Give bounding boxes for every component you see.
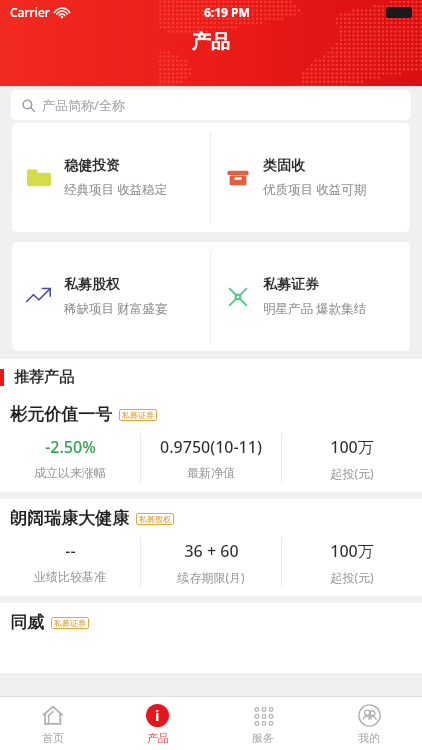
staticText: 6:19 PM xyxy=(204,4,250,20)
staticText: 业绩比较基准 xyxy=(34,569,106,584)
staticText: i xyxy=(155,706,160,725)
staticText: 100万 xyxy=(330,540,374,562)
other: 首页 xyxy=(41,704,64,727)
staticText: 同威 xyxy=(10,612,44,633)
other: 我的 xyxy=(358,704,381,727)
staticText: 朗阔瑞康大健康 xyxy=(10,508,129,529)
staticText: -2.50% xyxy=(45,436,96,458)
other: 产品 xyxy=(146,704,169,727)
staticText: 续存期限(月) xyxy=(177,569,245,585)
button[interactable]: 同威 xyxy=(0,603,422,673)
staticText: 类固收 xyxy=(263,157,305,175)
staticText: 成立以来涨幅 xyxy=(34,465,106,480)
button[interactable]: 我的 xyxy=(316,697,422,750)
button[interactable]: 首页 xyxy=(0,697,105,750)
staticText: 优质项目 收益可期 xyxy=(263,181,367,198)
button[interactable]: 私募证券 xyxy=(211,242,410,351)
button[interactable]: 稳健投资 xyxy=(12,123,210,232)
staticText: 明星产品 爆款集结 xyxy=(263,300,367,317)
button[interactable]: 服务 xyxy=(210,697,316,750)
staticText: 起投(元) xyxy=(330,569,374,585)
button[interactable]: 朗阔瑞康大健康 xyxy=(0,499,422,596)
staticText: 最新净值 xyxy=(187,465,235,480)
staticText: 稳健投资 xyxy=(64,157,120,175)
staticText: 100万 xyxy=(330,436,374,458)
staticText: 彬元价值一号 xyxy=(10,404,112,425)
other: 私募证券 xyxy=(225,284,251,310)
other: 服务 xyxy=(253,705,275,727)
other: 私募股权 xyxy=(25,283,53,311)
staticText: 0.9750(10-11) xyxy=(160,436,262,458)
staticText: 我的 xyxy=(358,731,380,745)
staticText: 私募证券 xyxy=(122,410,154,420)
button[interactable]: 产品 xyxy=(105,697,210,750)
staticText: 产品 xyxy=(192,30,230,54)
button[interactable]: 类固收 xyxy=(211,123,410,232)
staticText: 推荐产品 xyxy=(14,368,74,387)
staticText: 经典项目 收益稳定 xyxy=(64,181,168,198)
staticText: -- xyxy=(65,540,76,562)
staticText: 首页 xyxy=(42,731,64,745)
staticText: 稀缺项目 财富盛宴 xyxy=(64,300,168,317)
button[interactable]: 产品简称/全称 xyxy=(11,90,411,120)
staticText: 产品简称/全称 xyxy=(42,96,125,114)
staticText: 私募证券 xyxy=(263,276,319,294)
button[interactable]: 彬元价值一号 xyxy=(0,395,422,492)
other: 稳健投资 xyxy=(26,165,52,191)
staticText: 36 + 60 xyxy=(184,540,239,562)
staticText: 服务 xyxy=(252,731,274,745)
button[interactable]: 私募股权 xyxy=(12,242,210,351)
staticText: 起投(元) xyxy=(330,465,374,481)
other: 类固收 xyxy=(226,166,250,190)
staticText: Carrier xyxy=(10,4,50,20)
staticText: 产品 xyxy=(147,731,169,745)
staticText: 私募证券 xyxy=(54,618,86,628)
staticText: 私募股权 xyxy=(64,276,120,294)
staticText: 私募股权 xyxy=(139,514,171,524)
